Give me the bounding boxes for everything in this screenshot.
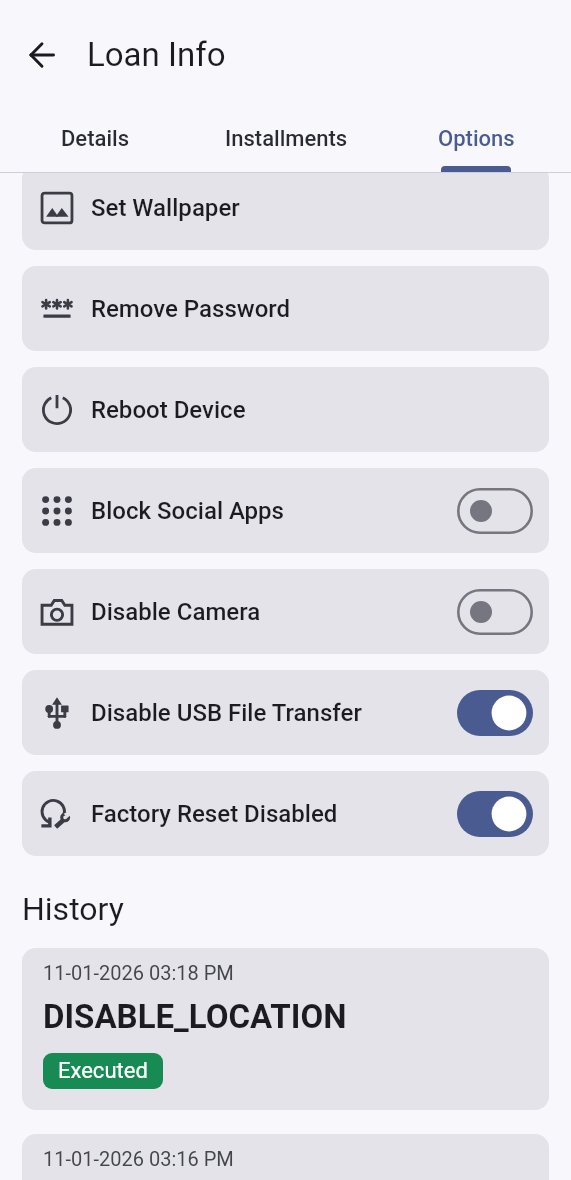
staticText: History bbox=[22, 890, 124, 928]
button[interactable]: 11-01-2026 03:18 PM bbox=[22, 948, 549, 1110]
button[interactable]: Remove Password bbox=[22, 266, 549, 351]
button[interactable]: Set Wallpaper bbox=[22, 173, 549, 250]
button[interactable]: Disable Camera bbox=[22, 569, 549, 654]
staticText: Installments bbox=[225, 126, 348, 152]
staticText: Options bbox=[438, 126, 515, 152]
button[interactable]: Installments bbox=[191, 108, 381, 172]
staticText: Block Social Apps bbox=[91, 497, 284, 525]
staticText: Reboot Device bbox=[91, 396, 246, 424]
button[interactable]: 11-01-2026 03:16 PM bbox=[22, 1134, 549, 1180]
button[interactable]: Block Social Apps bbox=[22, 468, 549, 553]
button[interactable]: Back bbox=[18, 31, 66, 79]
button[interactable]: Details bbox=[0, 108, 191, 172]
button[interactable]: Factory Reset Disabled bbox=[22, 771, 549, 856]
staticText: Loan Info bbox=[87, 35, 226, 74]
button[interactable]: Executed bbox=[43, 1053, 163, 1089]
button[interactable]: Options bbox=[381, 108, 571, 172]
staticText: 11-01-2026 03:16 PM bbox=[43, 1147, 234, 1170]
button[interactable]: Disable USB File Transfer bbox=[22, 670, 549, 755]
staticText: Details bbox=[61, 126, 130, 152]
staticText: Remove Password bbox=[91, 295, 291, 323]
staticText: Disable Camera bbox=[91, 598, 261, 626]
button[interactable]: Reboot Device bbox=[22, 367, 549, 452]
staticText: Executed bbox=[58, 1058, 148, 1084]
staticText: DISABLE_LOCATION bbox=[43, 997, 347, 1036]
staticText: Disable USB File Transfer bbox=[91, 699, 362, 727]
staticText: Factory Reset Disabled bbox=[91, 800, 338, 828]
staticText: 11-01-2026 03:18 PM bbox=[43, 961, 234, 984]
staticText: Set Wallpaper bbox=[91, 194, 240, 222]
